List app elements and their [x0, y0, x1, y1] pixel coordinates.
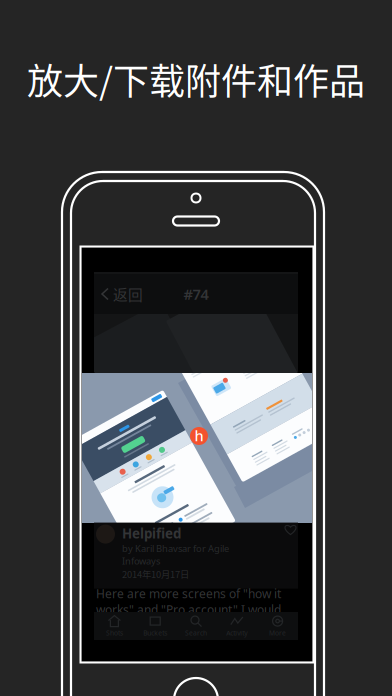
- staticText: Buckets: [143, 629, 167, 637]
- staticText: Shots: [106, 629, 123, 637]
- button[interactable]: 返回: [94, 274, 150, 314]
- staticText: 放大/下载附件和作品: [27, 53, 365, 105]
- staticText: Activity: [226, 629, 247, 637]
- button[interactable]: More: [257, 612, 298, 640]
- staticText: #74: [183, 284, 208, 304]
- button[interactable]: Search: [176, 612, 216, 640]
- staticText: Here are more screens of "how it works" …: [96, 586, 281, 633]
- staticText: More: [269, 629, 286, 637]
- button[interactable]: Like: [285, 525, 296, 535]
- staticText: by Karil Bhavsar for Agile Infoways: [122, 542, 229, 567]
- button[interactable]: Activity: [216, 612, 257, 640]
- button[interactable]: Shots: [94, 612, 135, 640]
- staticText: 返回: [113, 283, 143, 305]
- button[interactable]: Buckets: [135, 612, 176, 640]
- staticText: h: [194, 426, 203, 445]
- button[interactable]: Helpified: [188, 425, 210, 447]
- staticText: Search: [185, 629, 207, 637]
- staticText: Helpified: [122, 525, 181, 542]
- staticText: 2014年10月17日: [122, 567, 189, 581]
